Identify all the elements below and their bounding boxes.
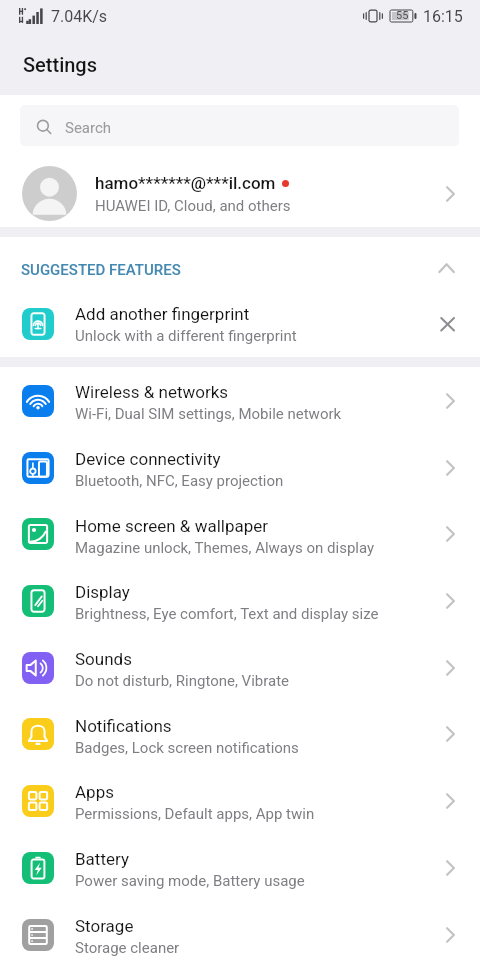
staticText: Storage cleaner [75, 939, 180, 957]
staticText: Wi-Fi, Dual SIM settings, Mobile network [75, 405, 342, 423]
button[interactable]: hamo*******@***il.com [0, 160, 480, 227]
button[interactable]: Wireless & networks [0, 367, 480, 434]
staticText: Apps [75, 782, 114, 802]
button[interactable]: Battery [0, 834, 480, 901]
button[interactable]: Add another fingerprint [0, 290, 480, 357]
staticText: hamo*******@***il.com [95, 173, 276, 193]
staticText: Magazine unlock, Themes, Always on displ… [75, 539, 375, 557]
staticText: Home screen & wallpaper [75, 516, 269, 536]
staticText: Unlock with a different fingerprint [75, 327, 297, 345]
staticText: Add another fingerprint [75, 304, 250, 324]
button[interactable]: Sounds [0, 634, 480, 701]
staticText: SUGGESTED FEATURES [21, 261, 181, 279]
other: Collapse section [435, 254, 459, 278]
staticText: Search [65, 119, 112, 137]
button[interactable]: Device connectivity [0, 434, 480, 501]
other: Dismiss suggestion [438, 312, 462, 336]
staticText: Display [75, 582, 130, 602]
staticText: 7.04K/s [51, 7, 108, 26]
staticText: Power saving mode, Battery usage [75, 872, 305, 890]
button[interactable]: Apps [0, 767, 480, 834]
button[interactable]: SUGGESTED FEATURES [0, 237, 480, 290]
button[interactable]: Notifications [0, 701, 480, 767]
staticText: Permissions, Default apps, App twin [75, 805, 315, 823]
staticText: Settings [23, 53, 98, 76]
staticText: HUAWEI ID, Cloud, and others [95, 197, 291, 215]
staticText: Brightness, Eye comfort, Text and displa… [75, 605, 379, 623]
staticText: Bluetooth, NFC, Easy projection [75, 472, 284, 490]
staticText: Notifications [75, 716, 172, 736]
staticText: Device connectivity [75, 449, 221, 469]
button[interactable]: Storage [0, 901, 480, 960]
staticText: Battery [75, 849, 129, 869]
staticText: Sounds [75, 649, 132, 669]
staticText: Wireless & networks [75, 382, 229, 402]
staticText: Storage [75, 916, 134, 936]
staticText: 55 [396, 9, 409, 22]
button[interactable]: Home screen & wallpaper [0, 501, 480, 567]
staticText: Badges, Lock screen notifications [75, 739, 299, 757]
staticText: Do not disturb, Ringtone, Vibrate [75, 672, 290, 690]
staticText: 16:15 [423, 7, 463, 26]
button[interactable]: Search [20, 105, 459, 146]
button[interactable]: Display [0, 567, 480, 634]
